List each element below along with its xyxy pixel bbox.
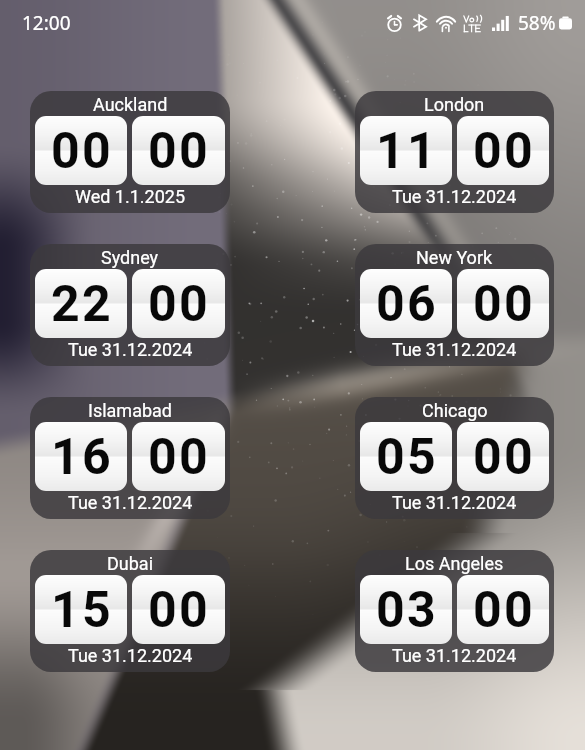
- button[interactable]: Auckland: [30, 91, 230, 213]
- staticText: 22: [51, 275, 114, 334]
- staticText: Tue 31.12.2024: [392, 186, 517, 207]
- staticText: 58%: [518, 10, 556, 36]
- staticText: 12:00: [22, 10, 71, 36]
- staticText: London: [424, 94, 485, 115]
- staticText: 00: [148, 581, 211, 640]
- staticText: 00: [473, 428, 536, 487]
- staticText: Tue 31.12.2024: [392, 645, 517, 666]
- staticText: 00: [148, 122, 211, 181]
- button[interactable]: Chicago: [355, 397, 554, 519]
- button[interactable]: Sydney: [30, 244, 230, 366]
- staticText: 00: [473, 275, 536, 334]
- staticText: Tue 31.12.2024: [392, 492, 517, 513]
- staticText: Los Angeles: [405, 553, 504, 574]
- staticText: 16: [51, 428, 114, 487]
- staticText: Auckland: [93, 94, 168, 115]
- staticText: 00: [51, 122, 114, 181]
- staticText: Tue 31.12.2024: [392, 339, 517, 360]
- staticText: Tue 31.12.2024: [68, 492, 193, 513]
- staticText: 00: [148, 275, 211, 334]
- button[interactable]: Dubai: [30, 550, 230, 672]
- staticText: Wed 1.1.2025: [75, 186, 186, 207]
- staticText: Chicago: [422, 400, 488, 421]
- staticText: 15: [51, 581, 114, 640]
- staticText: Dubai: [107, 553, 154, 574]
- staticText: Islamabad: [88, 400, 172, 421]
- staticText: 06: [376, 275, 439, 334]
- staticText: 05: [376, 428, 439, 487]
- button[interactable]: New York: [355, 244, 554, 366]
- staticText: 11: [376, 122, 439, 181]
- staticText: Tue 31.12.2024: [68, 339, 193, 360]
- staticText: Sydney: [101, 247, 159, 268]
- staticText: 00: [473, 581, 536, 640]
- button[interactable]: Los Angeles: [355, 550, 554, 672]
- staticText: New York: [416, 247, 493, 268]
- staticText: 00: [473, 122, 536, 181]
- staticText: Tue 31.12.2024: [68, 645, 193, 666]
- button[interactable]: London: [355, 91, 554, 213]
- staticText: 03: [376, 581, 439, 640]
- staticText: 00: [148, 428, 211, 487]
- button[interactable]: Islamabad: [30, 397, 230, 519]
